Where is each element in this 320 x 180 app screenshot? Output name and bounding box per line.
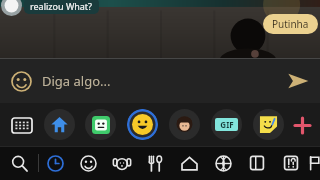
button[interactable]: Food — [138, 146, 172, 180]
button[interactable]: Home stickers — [44, 109, 75, 140]
staticText: realizou What? — [30, 0, 93, 12]
staticText: Putinha — [272, 17, 309, 31]
button[interactable]: Avatar stickers — [169, 109, 200, 140]
button[interactable]: Recent — [39, 146, 72, 180]
button[interactable]: Stickers — [253, 109, 284, 140]
button[interactable]: Activity — [206, 146, 240, 180]
staticText: Diga algo... — [42, 72, 111, 90]
button[interactable]: Emoji — [127, 109, 158, 140]
button[interactable]: Flags — [308, 146, 320, 180]
button[interactable]: Places — [172, 146, 206, 180]
button[interactable]: Emoji — [7, 67, 35, 95]
button[interactable]: Smileys — [72, 146, 105, 180]
button[interactable]: Symbols — [274, 146, 308, 180]
button[interactable]: Animals — [105, 146, 138, 180]
button[interactable]: Add sticker pack — [289, 110, 315, 140]
button[interactable]: Keyboard — [5, 108, 39, 142]
button[interactable]: Objects — [240, 146, 274, 180]
button[interactable]: Search — [0, 146, 38, 180]
button[interactable]: Send — [283, 66, 313, 96]
button[interactable]: Diga algo... — [42, 61, 283, 101]
button[interactable]: Putinha — [263, 14, 318, 34]
staticText: GIF — [220, 119, 234, 130]
button[interactable]: GIF — [211, 109, 242, 140]
button[interactable]: Bot stickers — [85, 109, 116, 140]
